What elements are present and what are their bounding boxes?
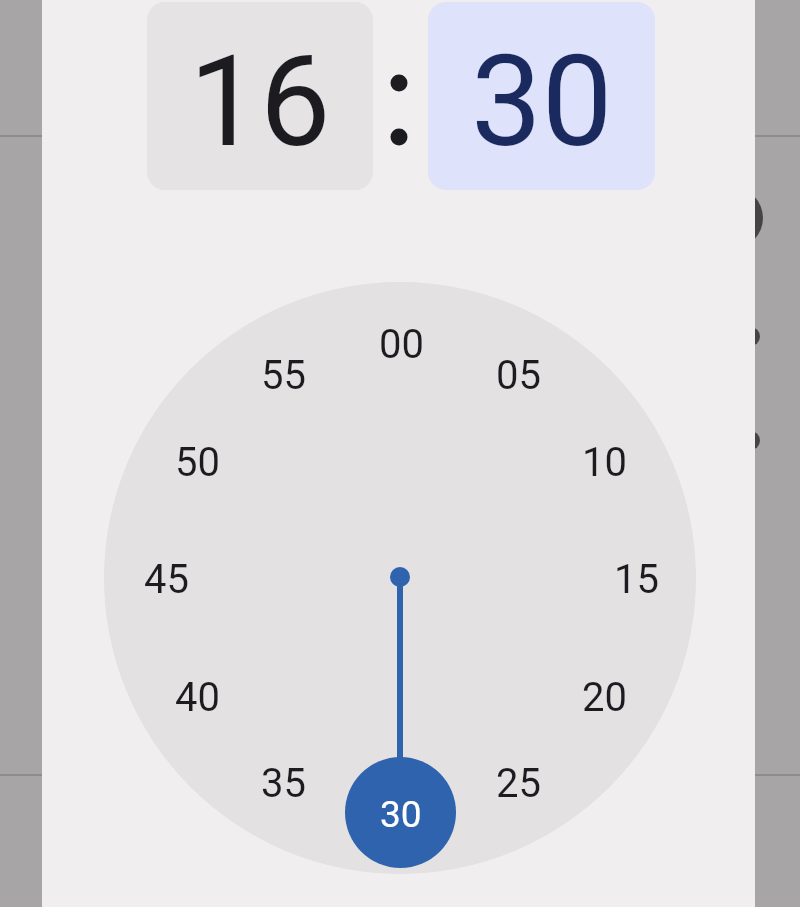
staticText: 16 — [189, 28, 331, 176]
staticText: 50 — [175, 439, 220, 486]
staticText: 30 — [380, 793, 422, 836]
staticText: 20 — [582, 674, 627, 721]
staticText: 25 — [496, 760, 541, 807]
staticText: 55 — [261, 352, 306, 399]
staticText: 35 — [261, 760, 306, 807]
staticText: 15 — [614, 556, 659, 603]
staticText: 40 — [175, 674, 220, 721]
button[interactable]: 30 — [345, 757, 456, 868]
button[interactable]: 16 — [147, 2, 373, 190]
staticText: 05 — [496, 352, 541, 399]
staticText: 00 — [379, 321, 424, 368]
staticText: 10 — [582, 439, 627, 486]
button[interactable] — [104, 282, 696, 874]
button[interactable]: 30 — [428, 2, 655, 190]
staticText: 30 — [471, 28, 613, 176]
staticText: 45 — [144, 556, 189, 603]
